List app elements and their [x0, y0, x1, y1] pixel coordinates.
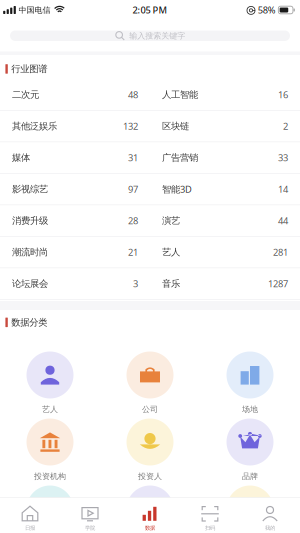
staticText: 数据分类 [11, 317, 47, 328]
staticText: 44 [278, 214, 288, 227]
button[interactable]: 二次元 [0, 79, 150, 110]
button[interactable]: 投资机构 [0, 418, 100, 485]
staticText: 影视综艺 [12, 183, 48, 195]
staticText: 28 [128, 214, 138, 227]
staticText: 33 [278, 151, 288, 164]
button[interactable]: 品牌 [200, 418, 300, 485]
staticText: 58% [258, 4, 276, 16]
button[interactable]: 搜索 [10, 30, 290, 41]
staticText: 区块链 [162, 120, 189, 132]
button[interactable]: 其他泛娱乐 [0, 111, 150, 141]
button[interactable]: 人工智能 [150, 79, 300, 110]
button[interactable]: 消费升级 [0, 205, 150, 236]
staticText: 广告营销 [162, 152, 198, 163]
button[interactable]: 演艺 [150, 205, 300, 236]
staticText: 我的 [265, 525, 275, 531]
button[interactable]: 扫码 [180, 498, 240, 533]
staticText: 艺人 [42, 404, 58, 414]
staticText: 其他泛娱乐 [12, 120, 57, 132]
staticText: 16 [278, 88, 288, 101]
button[interactable]: 我的 [240, 498, 300, 533]
staticText: 扫码 [205, 525, 215, 531]
staticText: 3 [133, 277, 138, 290]
staticText: 输入搜索关键字 [129, 31, 185, 41]
staticText: 2:05 PM [132, 4, 167, 16]
button[interactable]: 智能3D [150, 174, 300, 204]
staticText: 场地 [242, 404, 258, 414]
staticText: 2 [283, 120, 288, 132]
button[interactable]: 公司 [100, 351, 200, 418]
staticText: 演艺 [162, 215, 180, 226]
staticText: 智能3D [162, 183, 192, 195]
button[interactable]: 媒体 [0, 142, 150, 173]
button[interactable]: 区块链 [150, 111, 300, 141]
staticText: 行业图谱 [11, 63, 47, 75]
button[interactable]: 潮流时尚 [0, 237, 150, 267]
button[interactable]: 音乐 [150, 268, 300, 299]
staticText: 媒体 [12, 152, 30, 163]
staticText: 艺人 [162, 246, 180, 258]
button[interactable]: 广告营销 [150, 142, 300, 173]
staticText: 数据 [145, 525, 155, 531]
staticText: 14 [278, 183, 288, 195]
button[interactable]: 影视综艺 [0, 174, 150, 204]
staticText: 公司 [142, 404, 158, 414]
button[interactable]: 场地 [200, 351, 300, 418]
button[interactable]: 艺人 [0, 351, 100, 418]
staticText: 音乐 [162, 278, 180, 289]
button[interactable]: 论坛展会 [0, 268, 150, 299]
staticText: 48 [128, 88, 138, 101]
staticText: 31 [128, 151, 138, 164]
staticText: 21 [128, 246, 138, 258]
button[interactable]: 学院 [60, 498, 120, 533]
staticText: 学院 [85, 525, 95, 531]
staticText: 潮流时尚 [12, 246, 48, 258]
staticText: 消费升级 [12, 215, 48, 226]
staticText: 论坛展会 [12, 278, 48, 289]
staticText: 投资人 [138, 471, 162, 481]
staticText: 日报 [25, 525, 35, 531]
staticText: 品牌 [242, 471, 258, 481]
staticText: 投资机构 [34, 471, 66, 481]
staticText: 97 [128, 183, 138, 195]
staticText: 281 [273, 246, 288, 258]
staticText: 132 [123, 120, 138, 132]
button[interactable]: 艺人 [150, 237, 300, 267]
staticText: 中国电信 [18, 5, 50, 15]
staticText: 二次元 [12, 89, 39, 100]
staticText: 1287 [268, 277, 288, 290]
button[interactable]: 投资人 [100, 418, 200, 485]
button[interactable]: 数据 [120, 498, 180, 533]
staticText: 人工智能 [162, 89, 198, 100]
button[interactable]: 日报 [0, 498, 60, 533]
